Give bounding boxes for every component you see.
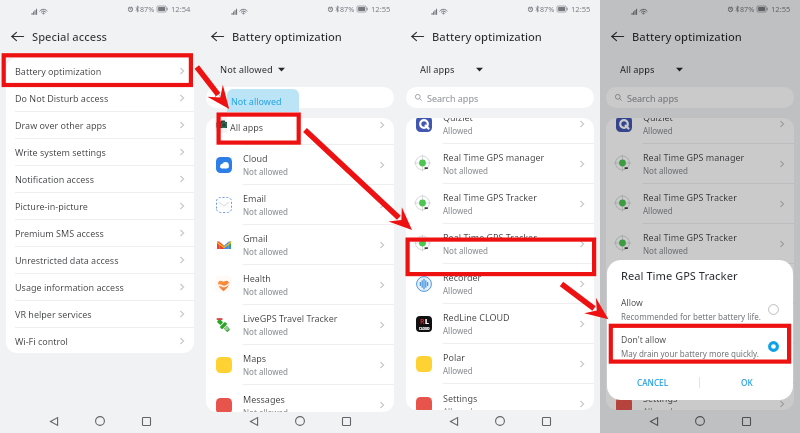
- staticText: 87%: [140, 4, 155, 14]
- button[interactable]: Recorder: [406, 264, 594, 303]
- staticText: L: [625, 317, 629, 327]
- button[interactable]: Navigate up: [209, 28, 225, 44]
- staticText: Not allowed: [643, 165, 688, 176]
- staticText: Real Time GPS Tracker: [643, 231, 737, 243]
- button[interactable]: OK: [700, 371, 793, 393]
- button[interactable]: Cloud: [206, 145, 394, 184]
- staticText: Health: [243, 272, 271, 284]
- button[interactable]: All apps: [620, 63, 683, 76]
- button[interactable]: Home: [91, 412, 109, 430]
- button[interactable]: Premium SMS access: [6, 220, 194, 246]
- button[interactable]: Write system settings: [6, 139, 194, 165]
- button[interactable]: Recent apps: [737, 412, 755, 430]
- staticText: Not allowed: [243, 286, 288, 297]
- button[interactable]: Settings: [606, 384, 794, 410]
- staticText: Write system settings: [15, 146, 106, 158]
- button[interactable]: Quizlet: [406, 118, 594, 143]
- button[interactable]: Polar: [406, 344, 594, 383]
- button[interactable]: Navigate up: [409, 28, 425, 44]
- button[interactable]: Back: [45, 412, 63, 430]
- button[interactable]: R: [406, 304, 594, 343]
- button[interactable]: Do Not Disturb access: [6, 85, 194, 111]
- button[interactable]: Camera: [206, 118, 394, 144]
- button[interactable]: Real Time GPS manager: [406, 144, 594, 183]
- button[interactable]: LiveGPS Travel Tracker: [206, 305, 394, 344]
- button[interactable]: Polar: [606, 344, 794, 383]
- button[interactable]: Gmail: [206, 225, 394, 264]
- button[interactable]: Maps: [206, 345, 394, 384]
- button[interactable]: VR helper services: [6, 301, 194, 327]
- staticText: Allowed: [443, 365, 473, 376]
- button[interactable]: Allow: [607, 296, 793, 322]
- staticText: L: [425, 317, 429, 327]
- staticText: CLOUD: [419, 327, 430, 331]
- button[interactable]: Real Time GPS Tracker: [606, 184, 794, 223]
- button[interactable]: R: [606, 304, 794, 343]
- staticText: CANCEL: [637, 377, 669, 388]
- staticText: Cloud: [243, 152, 268, 164]
- button[interactable]: CANCEL: [607, 371, 699, 393]
- staticText: Real Time GPS Tracker: [443, 231, 537, 243]
- button[interactable]: Real Time GPS Tracker: [406, 224, 594, 263]
- staticText: Search apps: [427, 92, 479, 104]
- button[interactable]: Home: [291, 412, 309, 430]
- staticText: Allowed: [443, 325, 473, 336]
- button[interactable]: Real Time GPS Tracker: [406, 184, 594, 223]
- button[interactable]: Notification access: [6, 166, 194, 192]
- staticText: Not allowed: [220, 63, 273, 76]
- staticText: Recorder: [643, 271, 682, 283]
- button[interactable]: Search apps: [406, 87, 594, 108]
- button[interactable]: Not allowed: [220, 63, 285, 76]
- staticText: Allowed: [643, 125, 673, 136]
- button[interactable]: Home: [491, 412, 509, 430]
- button[interactable]: Quizlet: [606, 118, 794, 143]
- staticText: Don't allow: [621, 334, 667, 346]
- button[interactable]: Recent apps: [137, 412, 155, 430]
- button[interactable]: Real Time GPS manager: [606, 144, 794, 183]
- button[interactable]: Back: [245, 412, 263, 430]
- button[interactable]: Picture-in-picture: [6, 193, 194, 219]
- button[interactable]: Not allowed: [227, 89, 299, 112]
- staticText: Wi-Fi control: [15, 335, 68, 347]
- button[interactable]: Navigate up: [609, 28, 625, 44]
- button[interactable]: All apps: [420, 63, 483, 76]
- button[interactable]: Recent apps: [537, 412, 555, 430]
- staticText: Battery optimization: [15, 65, 102, 77]
- button[interactable]: Don't allow: [607, 333, 793, 359]
- staticText: Usage information access: [15, 281, 124, 293]
- staticText: Search apps: [627, 92, 679, 104]
- staticText: Not allowed: [643, 245, 688, 256]
- button[interactable]: Battery optimization: [6, 58, 194, 84]
- button[interactable]: All apps: [227, 112, 299, 142]
- staticText: OK: [741, 377, 753, 388]
- button[interactable]: Draw over other apps: [6, 112, 194, 138]
- button[interactable]: Health: [206, 265, 394, 304]
- button[interactable]: Email: [206, 185, 394, 224]
- button[interactable]: Real Time GPS Tracker: [606, 224, 794, 263]
- button[interactable]: Unrestricted data access: [6, 247, 194, 273]
- staticText: Not allowed: [243, 246, 288, 257]
- button[interactable]: Search apps: [206, 87, 394, 108]
- button[interactable]: Wi-Fi control: [6, 328, 194, 353]
- staticText: Settings: [443, 392, 478, 404]
- button[interactable]: Settings: [406, 384, 594, 410]
- button[interactable]: Back: [645, 412, 663, 430]
- button[interactable]: Recent apps: [337, 412, 355, 430]
- staticText: Maps: [243, 352, 267, 364]
- staticText: Allowed: [443, 205, 473, 216]
- button[interactable]: Home: [691, 412, 709, 430]
- button[interactable]: Recorder: [606, 264, 794, 303]
- button[interactable]: Search apps: [606, 87, 794, 108]
- staticText: Allowed: [443, 406, 473, 410]
- staticText: CLOUD: [619, 327, 630, 331]
- button[interactable]: Usage information access: [6, 274, 194, 300]
- staticText: Quizlet: [443, 118, 473, 123]
- button[interactable]: Navigate up: [9, 28, 25, 44]
- button[interactable]: Back: [445, 412, 463, 430]
- staticText: VR helper services: [15, 308, 92, 320]
- button[interactable]: Messages: [206, 385, 394, 412]
- staticText: Not allowed: [243, 206, 288, 217]
- staticText: Real Time GPS manager: [443, 151, 545, 163]
